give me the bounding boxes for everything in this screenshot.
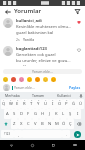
button[interactable]: Z [11, 119, 18, 129]
staticText: Paylas [69, 85, 81, 90]
button[interactable]: ?123 [1, 130, 14, 138]
button[interactable]: S [11, 109, 18, 119]
button[interactable]: Emoji [10, 76, 17, 83]
button[interactable]: L [60, 109, 67, 119]
staticText: Tamam [32, 93, 45, 98]
staticText: 0 [66, 99, 68, 102]
button[interactable]: Yorum ekle... [12, 85, 68, 90]
staticText: T [30, 101, 33, 107]
staticText: Kullanici [57, 93, 71, 98]
staticText: Ğ [72, 101, 76, 107]
button[interactable]: 5 [28, 99, 35, 109]
button[interactable]: D [18, 109, 25, 119]
button[interactable]: X [18, 119, 25, 129]
staticText: W [9, 101, 13, 107]
button[interactable]: Ç [67, 119, 74, 129]
button[interactable]: I [74, 109, 81, 119]
staticText: G [34, 111, 38, 117]
staticText: Merhaba [5, 93, 20, 98]
button[interactable]: kullanici_adi [0, 16, 85, 44]
button[interactable]: Gonder [74, 131, 81, 138]
staticText: J [49, 111, 51, 117]
button[interactable]: 1 [1, 99, 7, 109]
staticText: 7 [45, 99, 47, 102]
staticText: S [13, 111, 16, 117]
staticText: Gercekten cok guzel [16, 52, 56, 58]
button[interactable]: V [32, 119, 39, 129]
staticText: kullanici_adi [16, 18, 42, 24]
button[interactable]: Emoji [34, 76, 41, 83]
staticText: Kesinlikle muhtesem olmus tebrikler [16, 24, 73, 30]
staticText: Yanitla [23, 37, 35, 42]
staticText: I [77, 111, 79, 117]
button[interactable]: Sil [74, 119, 84, 129]
staticText: O [58, 101, 62, 107]
button[interactable]: Tamam [25, 92, 51, 99]
button[interactable]: G [32, 109, 39, 119]
staticText: baglantiadi123 [16, 46, 47, 52]
button[interactable]: 0 [63, 99, 70, 109]
button[interactable]: baglantiadi123 [0, 44, 85, 68]
button[interactable]: M [53, 119, 60, 129]
button[interactable]: Kullanici [51, 92, 77, 99]
button[interactable]: Emoji [42, 76, 49, 83]
button[interactable]: 2 [7, 99, 14, 109]
button[interactable]: Son uygulamalar [43, 140, 64, 150]
staticText: 2 [10, 99, 12, 102]
button[interactable]: Emoji [26, 76, 33, 83]
staticText: guzel bakisnian kal [16, 30, 54, 36]
button[interactable]: C [25, 119, 32, 129]
button[interactable]: Ö [60, 119, 67, 129]
button[interactable]: Begen [75, 18, 82, 25]
button[interactable]: 9 [56, 99, 63, 109]
staticText: E [16, 101, 19, 107]
button[interactable]: Klavye [64, 140, 85, 150]
button[interactable]: 6 [35, 99, 42, 109]
button[interactable]: Ü [77, 99, 84, 109]
button[interactable]: 3 [14, 99, 21, 109]
button[interactable]: N [46, 119, 53, 129]
button[interactable]: . [62, 130, 70, 138]
staticText: Ü [79, 101, 83, 107]
staticText: H [41, 111, 45, 117]
button[interactable]: A [4, 109, 11, 119]
button[interactable]: Paylas [68, 85, 82, 90]
button[interactable]: Klavyeyi kapat [0, 140, 22, 150]
button[interactable]: K [53, 109, 60, 119]
button[interactable]: Yorum ekle... [3, 69, 82, 74]
button[interactable]: Ğ [70, 99, 77, 109]
staticText: 3 [17, 99, 19, 102]
staticText: bu urunler, elinize ve gozunuze [16, 58, 73, 64]
staticText: X [20, 121, 23, 127]
button[interactable]: Geri [3, 7, 12, 16]
button[interactable]: Yanitla [23, 37, 35, 42]
button[interactable]: Emoji [2, 76, 9, 83]
staticText: Ö [62, 121, 66, 127]
button[interactable]: 8 [49, 99, 56, 109]
button[interactable]: Ana ekran [22, 140, 43, 150]
staticText: ?123 [4, 132, 11, 136]
button[interactable]: 7 [42, 99, 49, 109]
button[interactable]: B [39, 119, 46, 129]
button[interactable]: Filtrele [73, 7, 82, 16]
button[interactable]: 4 [21, 99, 28, 109]
button[interactable]: H [39, 109, 46, 119]
button[interactable]: Emoji [18, 76, 25, 83]
button[interactable]: , [14, 130, 22, 138]
button[interactable]: J [46, 109, 53, 119]
button[interactable]: Sesle yaz [77, 92, 85, 99]
staticText: V [34, 121, 37, 127]
button[interactable]: Shift [1, 119, 11, 129]
staticText: 2s [16, 37, 20, 42]
staticText: saglik [16, 64, 28, 66]
staticText: F [27, 111, 30, 117]
staticText: , [18, 132, 19, 137]
button[interactable]: Emoji [50, 76, 57, 83]
staticText: R [23, 101, 26, 107]
button[interactable]: Ş [67, 109, 74, 119]
button[interactable]: Begen [75, 46, 82, 53]
button[interactable]: Merhaba [0, 92, 25, 99]
staticText: Ş [69, 111, 72, 117]
button[interactable]: F [25, 109, 32, 119]
